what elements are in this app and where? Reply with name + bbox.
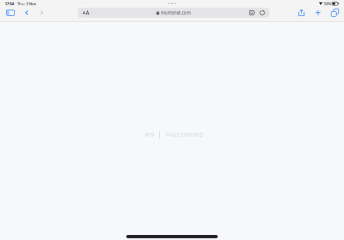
staticText: 419 [145,131,154,138]
button[interactable]: Forward [34,6,49,20]
button[interactable]: Share [293,6,309,20]
staticText: 17:54 [5,1,14,6]
button[interactable]: New Tab [309,6,326,20]
staticText: 50% [324,1,331,6]
button[interactable]: Address [78,8,269,18]
button[interactable]: Back [19,6,34,20]
staticText: mumsnet.com [161,10,191,16]
staticText: PAGE EXPIRED [166,131,203,138]
button[interactable]: Show Sidebar [2,6,19,20]
staticText: Thu 3 Nov [17,1,36,6]
button[interactable]: Show Tabs [326,6,343,20]
